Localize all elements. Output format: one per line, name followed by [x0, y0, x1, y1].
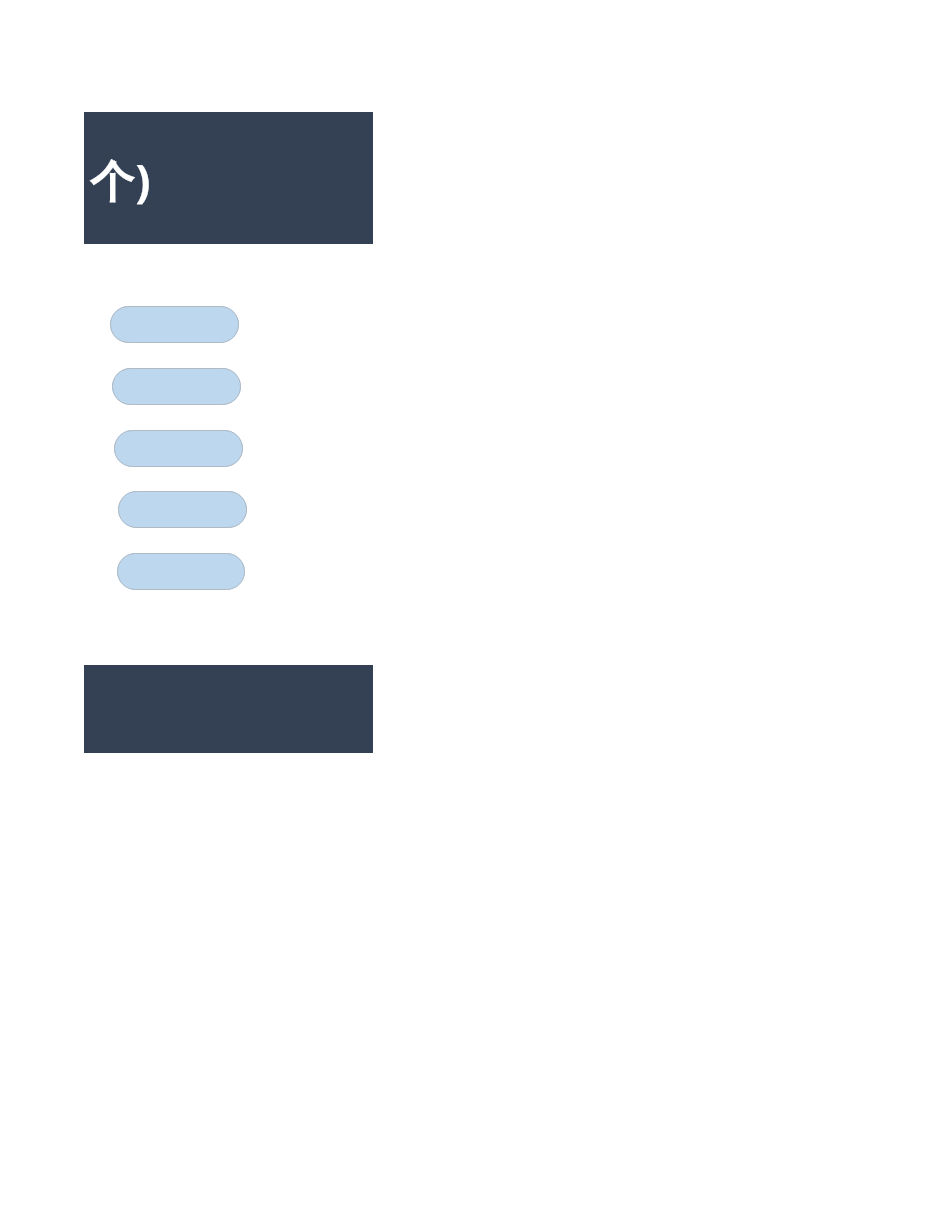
button[interactable]: List item — [112, 368, 241, 405]
button[interactable]: List item — [117, 553, 245, 590]
staticText: 个) — [90, 150, 152, 210]
button[interactable]: Top app bar — [84, 112, 373, 244]
button[interactable]: List item — [114, 430, 243, 467]
button[interactable]: List item — [110, 306, 239, 343]
button[interactable]: List item — [118, 491, 247, 528]
